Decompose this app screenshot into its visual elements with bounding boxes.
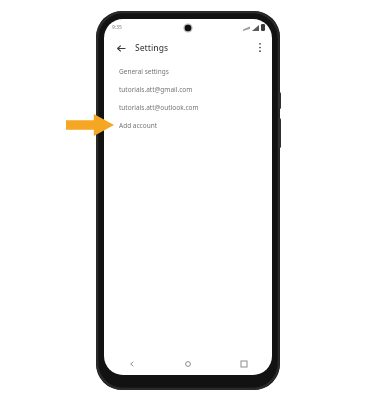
button[interactable]: Home: [160, 361, 216, 367]
button[interactable]: General settings: [104, 62, 272, 80]
button[interactable]: Back: [104, 361, 160, 367]
button[interactable]: Back: [114, 41, 128, 55]
button[interactable]: More options: [253, 41, 266, 54]
staticText: Add account: [119, 121, 158, 130]
staticText: General settings: [119, 67, 169, 76]
staticText: Settings: [135, 42, 169, 54]
button[interactable]: tutorials.att@outlook.com: [104, 98, 272, 116]
staticText: tutorials.att@outlook.com: [119, 103, 199, 112]
button[interactable]: Recent apps: [216, 361, 272, 367]
button[interactable]: tutorials.att@gmail.com: [104, 80, 272, 98]
button[interactable]: Add account: [104, 116, 272, 134]
staticText: tutorials.att@gmail.com: [119, 85, 193, 94]
staticText: 9:35: [112, 24, 122, 31]
